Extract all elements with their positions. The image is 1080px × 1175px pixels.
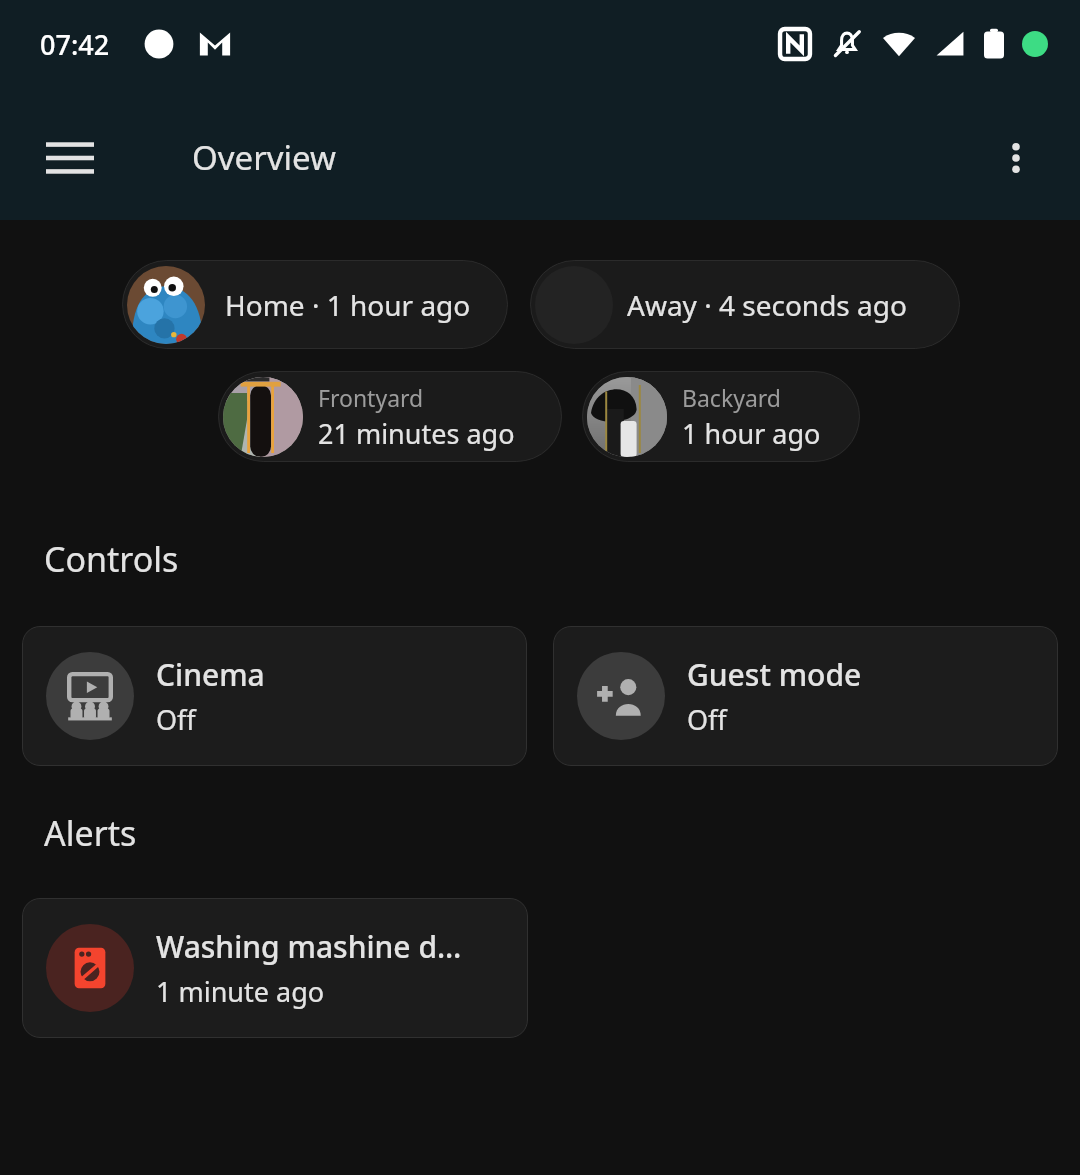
staticText: Off [156, 701, 196, 738]
staticText: Cinema [156, 654, 265, 695]
staticText: Home · 1 hour ago [225, 286, 471, 324]
button[interactable]: More options [972, 114, 1060, 202]
button[interactable]: Frontyard [218, 371, 562, 462]
button[interactable]: Home · 1 hour ago [122, 260, 508, 349]
staticText: Controls [44, 536, 179, 582]
staticText: 07:42 [40, 26, 110, 63]
staticText: Alerts [44, 810, 137, 856]
staticText: Washing mashine d… [156, 926, 462, 967]
staticText: Off [687, 701, 727, 738]
staticText: Away · 4 seconds ago [627, 286, 907, 324]
button[interactable]: Open navigation menu [26, 114, 114, 202]
staticText: Frontyard [318, 382, 424, 413]
staticText: Guest mode [687, 654, 862, 695]
button[interactable]: Backyard [582, 371, 860, 462]
staticText: 1 minute ago [156, 973, 325, 1010]
button[interactable]: Away · 4 seconds ago [530, 260, 960, 349]
staticText: Backyard [682, 382, 781, 413]
button[interactable]: Guest mode [553, 626, 1058, 766]
staticText: 21 minutes ago [318, 415, 515, 452]
staticText: 1 hour ago [682, 415, 821, 452]
button[interactable]: Washing mashine d… [22, 898, 528, 1038]
button[interactable]: Cinema scene [22, 626, 527, 766]
staticText: Overview [192, 135, 336, 180]
